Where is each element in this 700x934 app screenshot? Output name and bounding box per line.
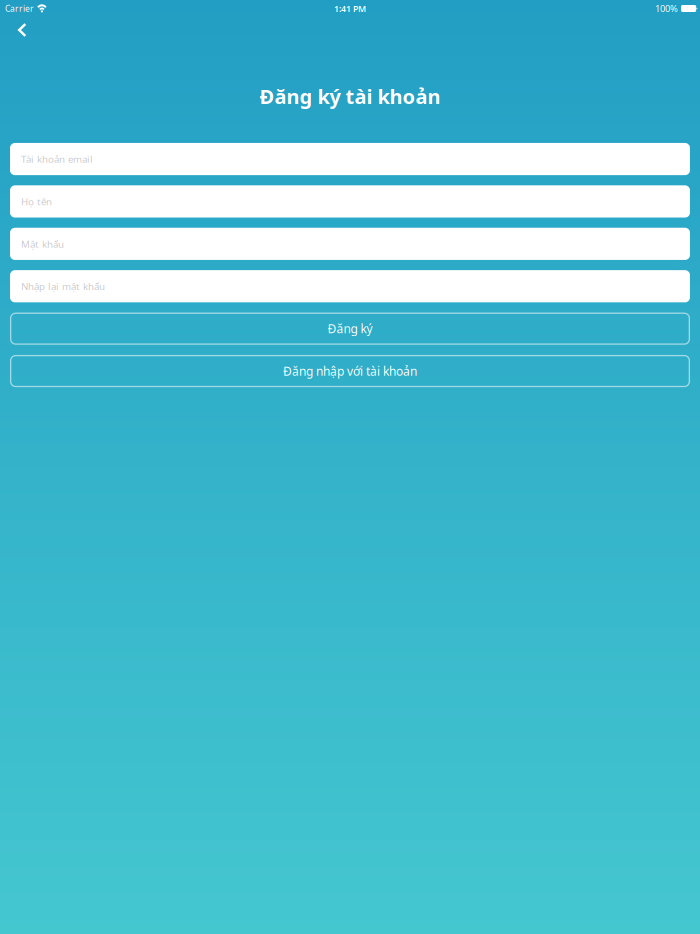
staticText: Nhập lại mật khẩu [21,280,105,293]
staticText: 1:41 PM [334,2,366,14]
button[interactable]: Đăng nhập với tài khoản [10,355,690,387]
button[interactable]: Tài khoản email [10,143,690,175]
staticText: Đăng ký [327,321,372,337]
staticText: Họ tên [21,195,52,208]
staticText: Đăng ký tài khoản [259,83,440,110]
button[interactable]: Nhập lại mật khẩu [10,270,690,302]
staticText: Tài khoản email [21,152,93,166]
button[interactable]: Đăng ký [10,313,690,345]
staticText: Mật khẩu [21,237,64,250]
button[interactable]: Back [0,17,26,41]
staticText: Carrier [5,3,34,14]
button[interactable]: Họ tên [10,185,690,218]
staticText: 100% [655,2,678,15]
staticText: Đăng nhập với tài khoản [283,363,417,379]
button[interactable]: Mật khẩu [10,228,690,260]
